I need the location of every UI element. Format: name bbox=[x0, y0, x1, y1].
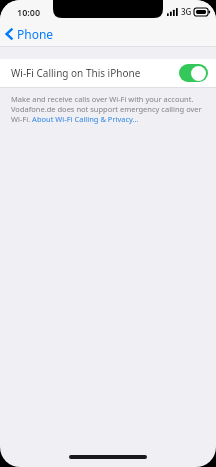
staticText: 10:00 bbox=[17, 6, 41, 18]
staticText: Make and receive calls over Wi-Fi with y… bbox=[11, 94, 202, 124]
button[interactable]: Wi-Fi Calling on This iPhone bbox=[0, 59, 216, 87]
staticText: 3G bbox=[181, 6, 192, 17]
button[interactable]: Phone bbox=[0, 23, 62, 45]
button[interactable]: Wi-Fi Calling toggle, on bbox=[179, 64, 208, 82]
staticText: Phone bbox=[17, 26, 54, 42]
button[interactable]: Make and receive calls over Wi-Fi with y… bbox=[11, 94, 202, 124]
staticText: Wi-Fi Calling on This iPhone bbox=[11, 66, 141, 80]
